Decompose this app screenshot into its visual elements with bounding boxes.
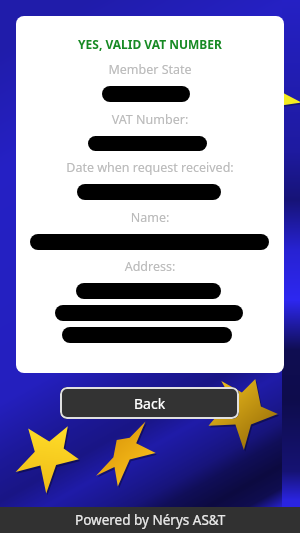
staticText: YES, VALID VAT NUMBER bbox=[16, 36, 284, 52]
staticText: VAT Number: bbox=[16, 111, 284, 128]
staticText: Member State bbox=[16, 61, 284, 78]
staticText: Powered by Nérys AS&T bbox=[75, 511, 226, 529]
staticText: Back bbox=[134, 394, 166, 413]
button[interactable]: Back bbox=[60, 387, 239, 419]
staticText: Address: bbox=[16, 258, 284, 275]
staticText: Name: bbox=[16, 209, 284, 226]
staticText: Date when request received: bbox=[16, 159, 284, 176]
